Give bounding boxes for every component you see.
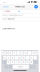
button[interactable]: x [11, 60, 14, 64]
staticText: a [4, 57, 5, 59]
button[interactable]: r [13, 51, 16, 55]
button[interactable]: v [18, 60, 22, 64]
staticText: c [16, 61, 17, 63]
button[interactable]: j [26, 56, 29, 60]
button[interactable]: q [1, 51, 5, 55]
button[interactable]: p [35, 51, 39, 55]
staticText: z [8, 61, 9, 63]
staticText: Cc/Bcc, From: kate@icloud.com [2, 14, 22, 16]
staticText: b [23, 61, 24, 63]
button[interactable]: Add recipient [18, 10, 20, 12]
button[interactable]: h [22, 56, 25, 60]
button[interactable]: send [29, 65, 36, 69]
button[interactable]: m [30, 60, 33, 64]
button[interactable]: s [7, 56, 10, 60]
staticText: u [25, 52, 26, 54]
button[interactable]: g [18, 56, 22, 60]
button[interactable]: Shift [2, 60, 7, 64]
button[interactable]: n [26, 60, 29, 64]
button[interactable]: c [14, 60, 18, 64]
button[interactable]: l [33, 56, 37, 60]
staticText: space [18, 66, 23, 68]
button[interactable]: b [22, 60, 25, 64]
staticText: d [12, 57, 13, 59]
button[interactable]: e [9, 51, 12, 55]
button[interactable]: Delete [33, 60, 38, 64]
staticText: m [31, 61, 32, 63]
button[interactable]: space [13, 65, 29, 69]
staticText: send [31, 66, 35, 68]
button[interactable]: t [16, 51, 20, 55]
button[interactable]: y [20, 51, 24, 55]
staticText: h [23, 57, 24, 59]
staticText: r [14, 52, 15, 54]
button[interactable]: u [24, 51, 27, 55]
staticText: Sent from my iPhone [2, 28, 15, 30]
staticText: Kate Bell [5, 10, 10, 12]
staticText: New Message [15, 6, 25, 8]
staticText: x [12, 61, 13, 63]
staticText: s [8, 57, 9, 59]
button[interactable]: o [32, 51, 35, 55]
button[interactable]: k [30, 56, 33, 60]
button[interactable]: f [14, 56, 18, 60]
staticText: p [36, 52, 37, 54]
staticText: Cancel [3, 6, 8, 8]
button[interactable]: a [3, 56, 7, 60]
staticText: n [27, 61, 28, 63]
staticText: To: [2, 10, 4, 12]
button[interactable]: z [7, 60, 10, 64]
staticText: q [2, 52, 3, 54]
staticText: 9:41 [3, 1, 6, 3]
button[interactable]: d [11, 56, 14, 60]
staticText: k [31, 57, 32, 59]
staticText: Weekend [8, 18, 15, 20]
button[interactable]: Send [34, 4, 38, 9]
staticText: Subject: [2, 18, 7, 20]
button[interactable]: Cancel [2, 4, 8, 9]
button[interactable]: w [5, 51, 8, 55]
